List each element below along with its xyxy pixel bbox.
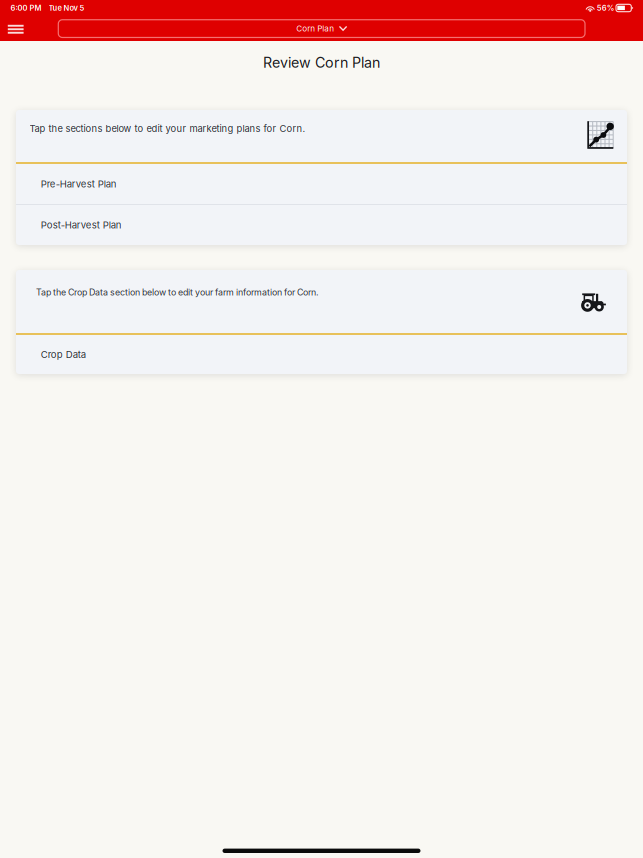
staticText: 6:00 PM <box>10 3 41 13</box>
button[interactable]: Corn Plan <box>58 17 585 37</box>
staticText: Tap the Crop Data section below to edit … <box>36 287 319 298</box>
staticText: Corn Plan <box>296 24 334 33</box>
button[interactable]: Pre-Harvest Plan <box>16 164 627 204</box>
staticText: Crop Data <box>41 349 86 360</box>
staticText: 56% <box>597 3 615 13</box>
staticText: Review Corn Plan <box>263 54 380 71</box>
staticText: Pre-Harvest Plan <box>41 178 117 190</box>
staticText: Tap the sections below to edit your mark… <box>30 123 306 134</box>
staticText: Post-Harvest Plan <box>41 219 122 231</box>
button[interactable]: Crop Data <box>16 335 627 374</box>
button[interactable]: Menu <box>0 16 40 38</box>
staticText: Tue Nov 5 <box>48 3 84 13</box>
button[interactable]: Post-Harvest Plan <box>16 205 627 245</box>
